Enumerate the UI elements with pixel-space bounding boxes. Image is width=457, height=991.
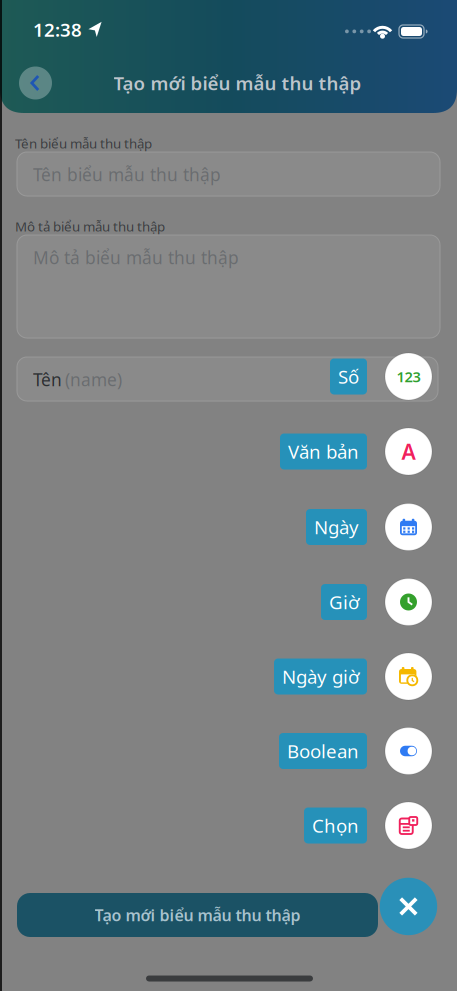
button[interactable]: Số (330, 358, 367, 394)
staticText: Mô tả biểu mẫu thu thập (33, 246, 239, 269)
button[interactable]: Ngày (306, 509, 367, 545)
button[interactable]: Tên (17, 357, 438, 401)
button[interactable]: Số (385, 353, 432, 400)
staticText: Mô tả biểu mẫu thu thập (15, 217, 165, 235)
staticText: A (401, 437, 415, 466)
button[interactable]: Giờ (385, 578, 432, 625)
staticText: Tên biểu mẫu thu thập (15, 134, 152, 152)
staticText: Boolean (287, 739, 359, 763)
button[interactable]: Văn bản (280, 433, 367, 469)
button[interactable]: Mô tả biểu mẫu thu thập (17, 235, 440, 338)
staticText: 123 (396, 367, 420, 386)
staticText: Văn bản (288, 439, 359, 464)
staticText: Ngày (314, 515, 359, 539)
button[interactable]: Tên biểu mẫu thu thập (17, 152, 440, 196)
button[interactable]: Close (380, 878, 437, 935)
staticText: Giờ (329, 590, 359, 614)
staticText: Ngày giờ (282, 664, 359, 689)
staticText: 12:38 (33, 17, 82, 42)
button[interactable]: Chọn (385, 802, 432, 849)
button[interactable]: Ngày giờ (274, 658, 367, 694)
button[interactable]: Chọn (304, 807, 367, 843)
button[interactable]: Ngày (385, 503, 432, 550)
staticText: Tạo mới biểu mẫu thu thập (94, 904, 300, 926)
staticText: Chọn (312, 813, 359, 838)
button[interactable]: Ngày giờ (385, 653, 432, 700)
button[interactable]: Tạo mới biểu mẫu thu thập (17, 893, 378, 937)
staticText: Số (338, 364, 359, 389)
button[interactable]: Boolean (385, 727, 432, 774)
button[interactable]: Văn bản (385, 428, 432, 475)
button[interactable]: Boolean (279, 733, 367, 769)
button[interactable]: Giờ (321, 584, 367, 620)
staticText: Tạo mới biểu mẫu thu thập (113, 71, 361, 95)
staticText: Tên (33, 368, 62, 391)
button[interactable]: Back (19, 66, 52, 99)
staticText: Tên biểu mẫu thu thập (33, 163, 221, 186)
staticText: (name) (65, 368, 122, 391)
